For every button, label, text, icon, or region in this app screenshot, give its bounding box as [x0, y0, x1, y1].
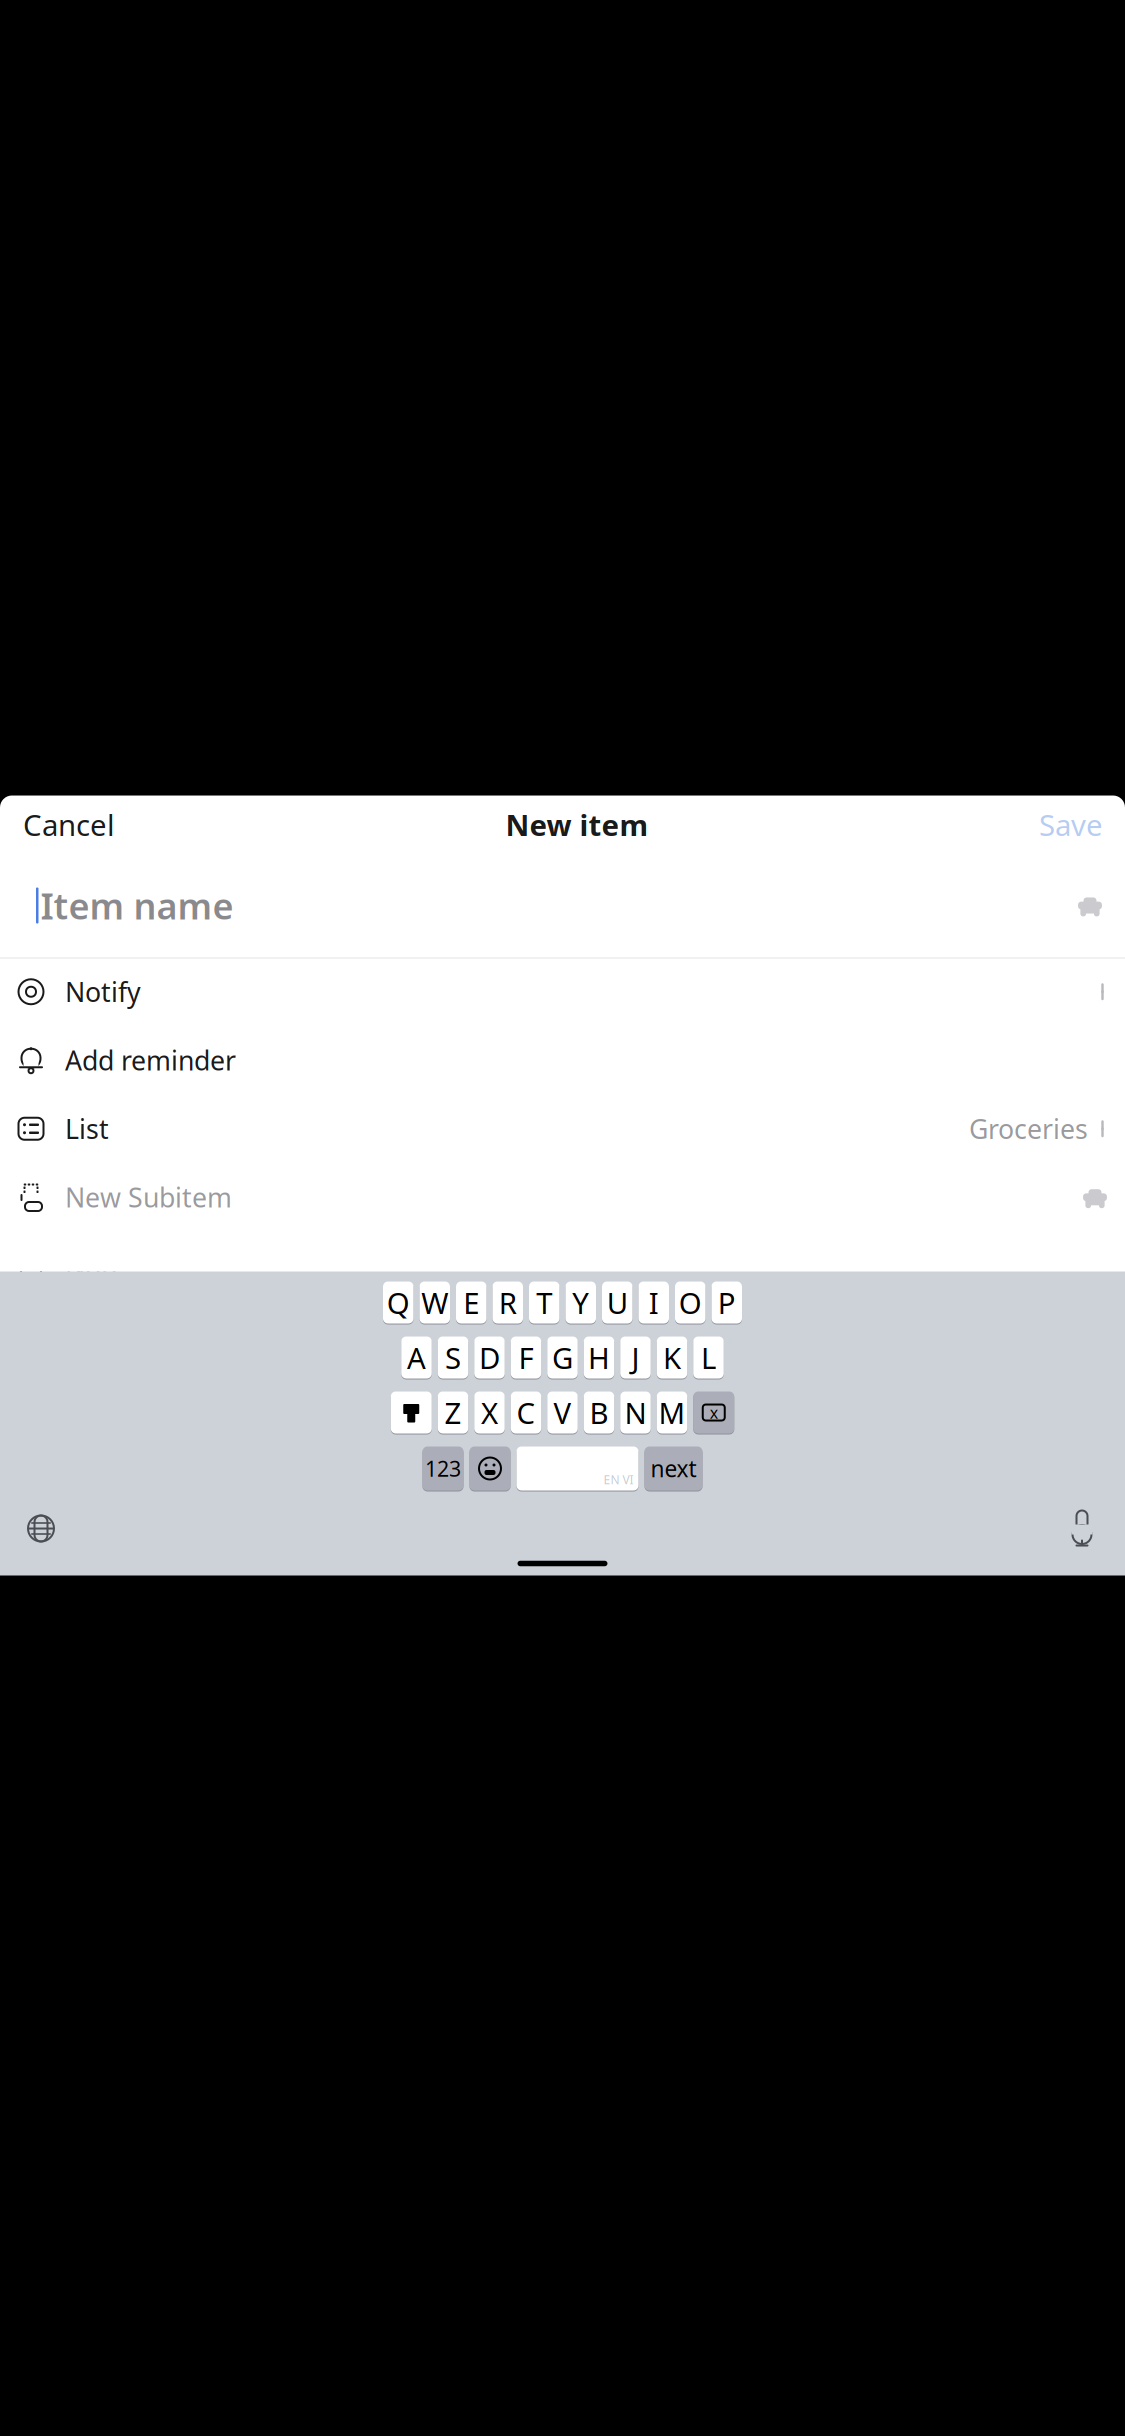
staticText: U [607, 1283, 628, 1322]
button[interactable]: M [657, 1390, 687, 1434]
button[interactable]: G [547, 1335, 578, 1379]
staticText: A [407, 1338, 426, 1377]
staticText: D [479, 1338, 500, 1377]
button[interactable]: 123 [422, 1445, 463, 1491]
button[interactable]: B [584, 1390, 614, 1434]
button[interactable]: Next keyboard [16, 1503, 66, 1553]
button[interactable]: List [0, 1111, 1125, 1146]
button[interactable]: Q [383, 1280, 413, 1324]
button[interactable]: X [474, 1390, 505, 1434]
staticText: Cancel [23, 805, 115, 844]
staticText: B [589, 1393, 608, 1432]
button[interactable]: Favourite [1067, 884, 1113, 926]
staticText: Add reminder [65, 1042, 236, 1078]
button[interactable]: O [675, 1280, 705, 1324]
staticText: Z [444, 1393, 461, 1432]
staticText: O [679, 1283, 702, 1322]
staticText: X [481, 1393, 498, 1432]
button[interactable]: Delete [693, 1390, 734, 1434]
staticText: N [624, 1393, 646, 1432]
button[interactable]: Emoji [469, 1445, 510, 1491]
button[interactable]: T [529, 1280, 559, 1324]
staticText: next [650, 1453, 696, 1483]
staticText: K [663, 1338, 681, 1377]
button[interactable]: Z [438, 1390, 468, 1434]
staticText: New Subitem [65, 1179, 232, 1215]
staticText: Item name [40, 882, 233, 929]
button[interactable]: Notify [0, 974, 1125, 1009]
staticText: C [516, 1393, 535, 1432]
staticText: Save [1039, 805, 1103, 844]
staticText: Groceries [969, 1111, 1088, 1146]
button[interactable]: R [492, 1280, 523, 1324]
staticText: Note [65, 1248, 126, 1283]
staticText: P [718, 1283, 736, 1322]
staticText: EN VI [603, 1472, 633, 1487]
button[interactable]: I [638, 1280, 669, 1324]
button[interactable]: S [438, 1335, 468, 1379]
staticText: S [445, 1338, 461, 1377]
staticText: 78 [1086, 882, 1102, 901]
button[interactable]: Dictation [1057, 1505, 1107, 1551]
button[interactable]: Attachment [0, 1317, 1125, 1351]
button[interactable]: Space [516, 1445, 638, 1491]
staticText: V [553, 1393, 571, 1432]
staticText: Y [572, 1283, 589, 1322]
staticText: F [518, 1338, 533, 1377]
staticText: T [536, 1283, 552, 1322]
button[interactable]: W [419, 1280, 450, 1324]
button[interactable]: C [511, 1390, 541, 1434]
button[interactable]: P [711, 1280, 742, 1324]
staticText: M [658, 1393, 685, 1432]
button[interactable]: Add reminder [0, 1043, 1125, 1077]
staticText: I [649, 1283, 659, 1322]
button[interactable]: F [511, 1335, 541, 1379]
button[interactable]: N [620, 1390, 651, 1434]
button[interactable]: next [644, 1445, 702, 1491]
button[interactable]: Save [1027, 797, 1115, 852]
button[interactable]: K [657, 1335, 687, 1379]
staticText: W [421, 1283, 448, 1322]
button[interactable]: E [456, 1280, 486, 1324]
button[interactable]: Shift [391, 1390, 432, 1434]
button[interactable]: D [474, 1335, 505, 1379]
staticText: R [499, 1283, 517, 1322]
staticText: x [710, 1402, 718, 1423]
staticText: J [631, 1338, 639, 1377]
button[interactable]: Cancel [11, 797, 127, 852]
button[interactable]: Y [565, 1280, 596, 1324]
button[interactable]: Note [0, 1248, 1125, 1283]
button[interactable]: New Subitem [0, 1180, 1125, 1214]
staticText: Notify [65, 974, 141, 1009]
staticText: List [65, 1111, 109, 1146]
staticText: 123 [425, 1454, 461, 1483]
button[interactable]: H [584, 1335, 614, 1379]
button[interactable]: J [620, 1335, 651, 1379]
staticText: L [701, 1338, 716, 1377]
staticText: E [463, 1283, 479, 1322]
button[interactable]: V [547, 1390, 578, 1434]
button[interactable]: A [401, 1335, 432, 1379]
staticText: 11:52 [32, 873, 104, 910]
staticText: New item [505, 805, 648, 844]
staticText: G [552, 1338, 573, 1377]
staticText: H [588, 1338, 610, 1377]
staticText: Q [387, 1283, 410, 1322]
button[interactable]: U [602, 1280, 632, 1324]
button[interactable]: L [693, 1335, 724, 1379]
